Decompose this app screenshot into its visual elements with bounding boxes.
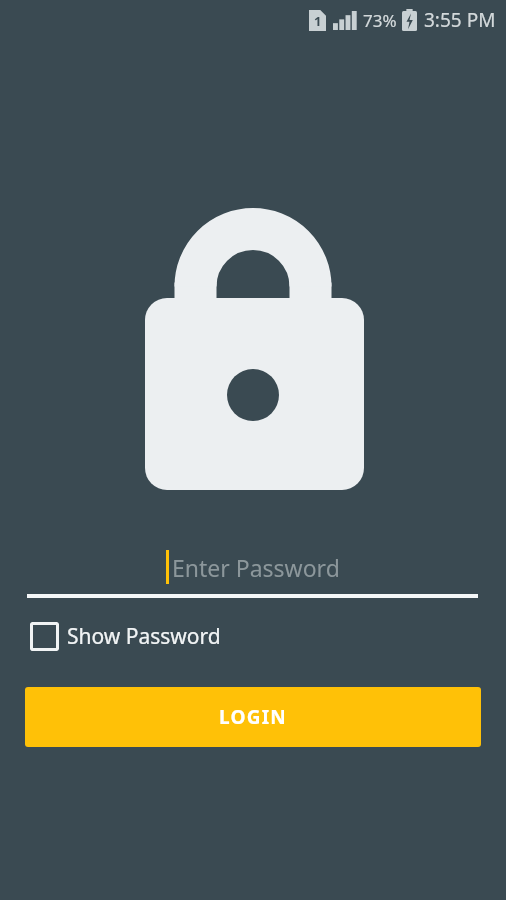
- button[interactable]: LOGIN: [25, 687, 481, 747]
- staticText: Enter Password: [172, 552, 340, 583]
- staticText: LOGIN: [219, 704, 287, 730]
- staticText: 1: [314, 12, 322, 30]
- button[interactable]: Show Password: [30, 619, 221, 653]
- button[interactable]: Enter Password: [27, 540, 478, 594]
- staticText: 73%: [363, 9, 397, 32]
- staticText: 3:55 PM: [424, 7, 496, 33]
- staticText: Show Password: [67, 622, 221, 651]
